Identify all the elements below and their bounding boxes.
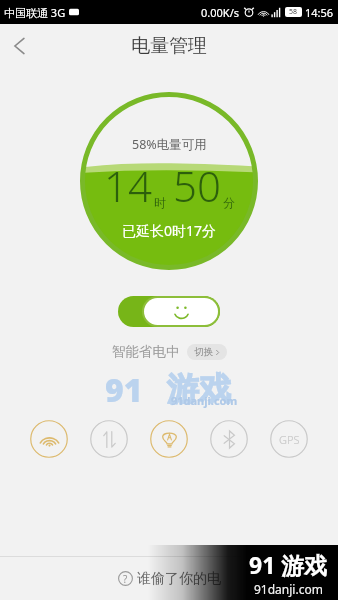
staticText: 58%电量可用 — [132, 136, 207, 153]
staticText: ? — [123, 572, 128, 586]
button[interactable]: Back — [0, 26, 40, 66]
button[interactable]: GPS — [270, 420, 308, 458]
staticText: 58 — [289, 7, 298, 17]
button[interactable]: 切换 — [187, 344, 227, 360]
staticText: 已延长0时17分 — [122, 221, 217, 240]
staticText: GPS — [279, 432, 300, 447]
staticText: 14 — [104, 157, 152, 214]
staticText: 切换 — [194, 346, 213, 358]
staticText: 0.00K/s — [201, 5, 239, 20]
staticText: 91danji.com — [171, 393, 238, 408]
staticText: 分 — [223, 195, 235, 210]
button[interactable]: ? — [0, 557, 338, 600]
staticText: 智能省电中 — [112, 343, 180, 360]
staticText: 91 — [105, 368, 143, 408]
staticText: 50 — [173, 157, 221, 214]
button[interactable]: Auto brightness — [150, 420, 188, 458]
staticText: 91 游戏 — [249, 549, 328, 580]
staticText: 游戏 — [167, 369, 231, 409]
staticText: 14:56 — [305, 5, 334, 20]
staticText: 电量管理 — [131, 34, 207, 58]
staticText: 谁偷了你的电 — [137, 570, 221, 588]
button[interactable]: Mobile data — [90, 420, 128, 458]
staticText: 中国联通 3G — [4, 5, 66, 20]
button[interactable]: Wi-Fi — [30, 420, 68, 458]
button[interactable]: Bluetooth — [210, 420, 248, 458]
button[interactable]: Power saving toggle — [118, 296, 220, 327]
staticText: 时 — [154, 195, 166, 210]
staticText: 91danji.com — [254, 581, 323, 597]
